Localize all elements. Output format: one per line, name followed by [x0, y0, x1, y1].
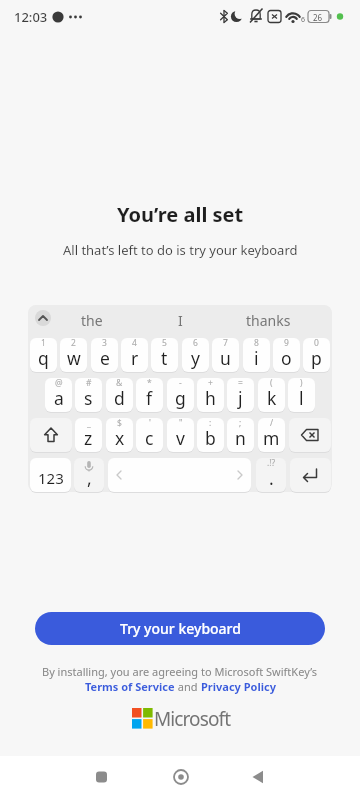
staticText: y: [191, 346, 200, 370]
button[interactable]: j: [227, 378, 254, 412]
staticText: Terms of Service: [85, 679, 175, 694]
staticText: *: [147, 378, 152, 389]
button[interactable]: g: [167, 378, 194, 412]
button[interactable]: .: [256, 458, 286, 492]
staticText: 6: [301, 15, 306, 25]
staticText: r: [131, 346, 139, 370]
staticText: .: [269, 466, 274, 490]
button[interactable]: r: [121, 338, 148, 372]
staticText: z: [84, 426, 93, 450]
staticText: t: [161, 346, 168, 370]
button[interactable]: w: [60, 338, 87, 372]
staticText: @: [55, 378, 63, 389]
staticText: o: [281, 346, 292, 370]
button[interactable]: [108, 458, 251, 492]
staticText: s: [84, 386, 93, 410]
staticText: a: [54, 386, 64, 410]
staticText: ': [149, 418, 151, 429]
staticText: 3: [102, 338, 107, 349]
staticText: .!?: [267, 458, 276, 469]
staticText: #: [86, 378, 92, 389]
staticText: g: [175, 386, 186, 410]
staticText: (: [270, 378, 273, 389]
staticText: 7: [223, 338, 228, 349]
staticText: c: [145, 426, 154, 450]
staticText: Microsoft: [154, 706, 231, 732]
button[interactable]: s: [75, 378, 102, 412]
button[interactable]: v: [167, 418, 194, 452]
staticText: &: [116, 378, 123, 389]
button[interactable]: l: [288, 378, 315, 412]
staticText: All that’s left to do is try your keyboa…: [63, 241, 298, 259]
button[interactable]: i: [243, 338, 270, 372]
staticText: 26: [313, 12, 323, 23]
button[interactable]: o: [273, 338, 300, 372]
button[interactable]: u: [212, 338, 239, 372]
button[interactable]: n: [227, 418, 254, 452]
button[interactable]: [246, 762, 276, 792]
button[interactable]: k: [258, 378, 285, 412]
button[interactable]: m: [258, 418, 285, 452]
button[interactable]: [166, 762, 196, 792]
staticText: m: [263, 426, 280, 450]
staticText: q: [38, 346, 49, 370]
staticText: ;: [239, 418, 242, 429]
staticText: 2: [71, 338, 76, 349]
button[interactable]: ,: [74, 458, 104, 492]
staticText: n: [235, 426, 246, 450]
staticText: I: [178, 311, 183, 330]
button[interactable]: x: [106, 418, 133, 452]
staticText: b: [205, 426, 216, 450]
staticText: ": [179, 418, 183, 429]
staticText: By installing, you are agreeing to Micro…: [42, 664, 318, 679]
staticText: h: [205, 386, 216, 410]
staticText: the: [81, 311, 103, 330]
staticText: +: [208, 378, 213, 389]
button[interactable]: c: [136, 418, 163, 452]
staticText: Privacy Policy: [201, 679, 276, 694]
button[interactable]: Try your keyboard: [35, 612, 325, 645]
button[interactable]: Privacy Policy: [201, 679, 276, 694]
staticText: 5: [162, 338, 167, 349]
button[interactable]: [30, 418, 72, 452]
staticText: 0: [314, 338, 319, 349]
staticText: $: [117, 418, 122, 429]
staticText: 12:03: [14, 8, 48, 26]
staticText: x: [115, 426, 125, 450]
button[interactable]: y: [182, 338, 209, 372]
staticText: =: [238, 378, 243, 389]
button[interactable]: q: [30, 338, 57, 372]
button[interactable]: a: [45, 378, 72, 412]
button[interactable]: e: [91, 338, 118, 372]
staticText: d: [114, 386, 125, 410]
button[interactable]: Terms of Service: [85, 679, 175, 694]
staticText: w: [67, 346, 81, 370]
staticText: v: [176, 426, 185, 450]
staticText: e: [100, 346, 110, 370]
staticText: ): [300, 378, 303, 389]
button[interactable]: 123: [30, 458, 71, 492]
button[interactable]: [35, 310, 51, 326]
staticText: 8: [254, 338, 259, 349]
staticText: f: [146, 386, 153, 410]
staticText: :: [209, 418, 212, 429]
button[interactable]: [290, 458, 331, 492]
staticText: /: [270, 418, 274, 429]
button[interactable]: p: [303, 338, 330, 372]
staticText: 123: [38, 468, 64, 488]
staticText: p: [311, 346, 322, 370]
staticText: u: [220, 346, 231, 370]
staticText: and: [175, 679, 201, 694]
button[interactable]: z: [75, 418, 102, 452]
button[interactable]: [86, 762, 116, 792]
button[interactable]: f: [136, 378, 163, 412]
button[interactable]: t: [151, 338, 178, 372]
staticText: ,: [87, 466, 92, 490]
button[interactable]: [289, 418, 331, 452]
staticText: 1: [41, 338, 46, 349]
button[interactable]: b: [197, 418, 224, 452]
button[interactable]: h: [197, 378, 224, 412]
staticText: l: [299, 386, 304, 410]
staticText: You’re all set: [117, 201, 244, 228]
button[interactable]: d: [106, 378, 133, 412]
